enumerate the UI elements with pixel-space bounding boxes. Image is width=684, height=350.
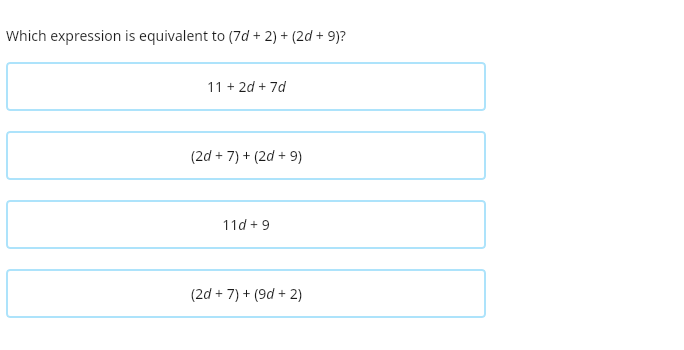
staticText: 11 + 2d + 7d <box>207 77 286 96</box>
button[interactable]: (2d + 7) + (2d + 9) <box>6 131 486 180</box>
staticText: 11d + 9 <box>222 215 270 234</box>
staticText: Which expression is equivalent to (7d + … <box>6 26 346 45</box>
button[interactable]: 11d + 9 <box>6 200 486 249</box>
staticText: (2d + 7) + (9d + 2) <box>191 284 302 303</box>
button[interactable]: (2d + 7) + (9d + 2) <box>6 269 486 318</box>
staticText: (2d + 7) + (2d + 9) <box>191 146 302 165</box>
button[interactable]: 11 + 2d + 7d <box>6 62 486 111</box>
